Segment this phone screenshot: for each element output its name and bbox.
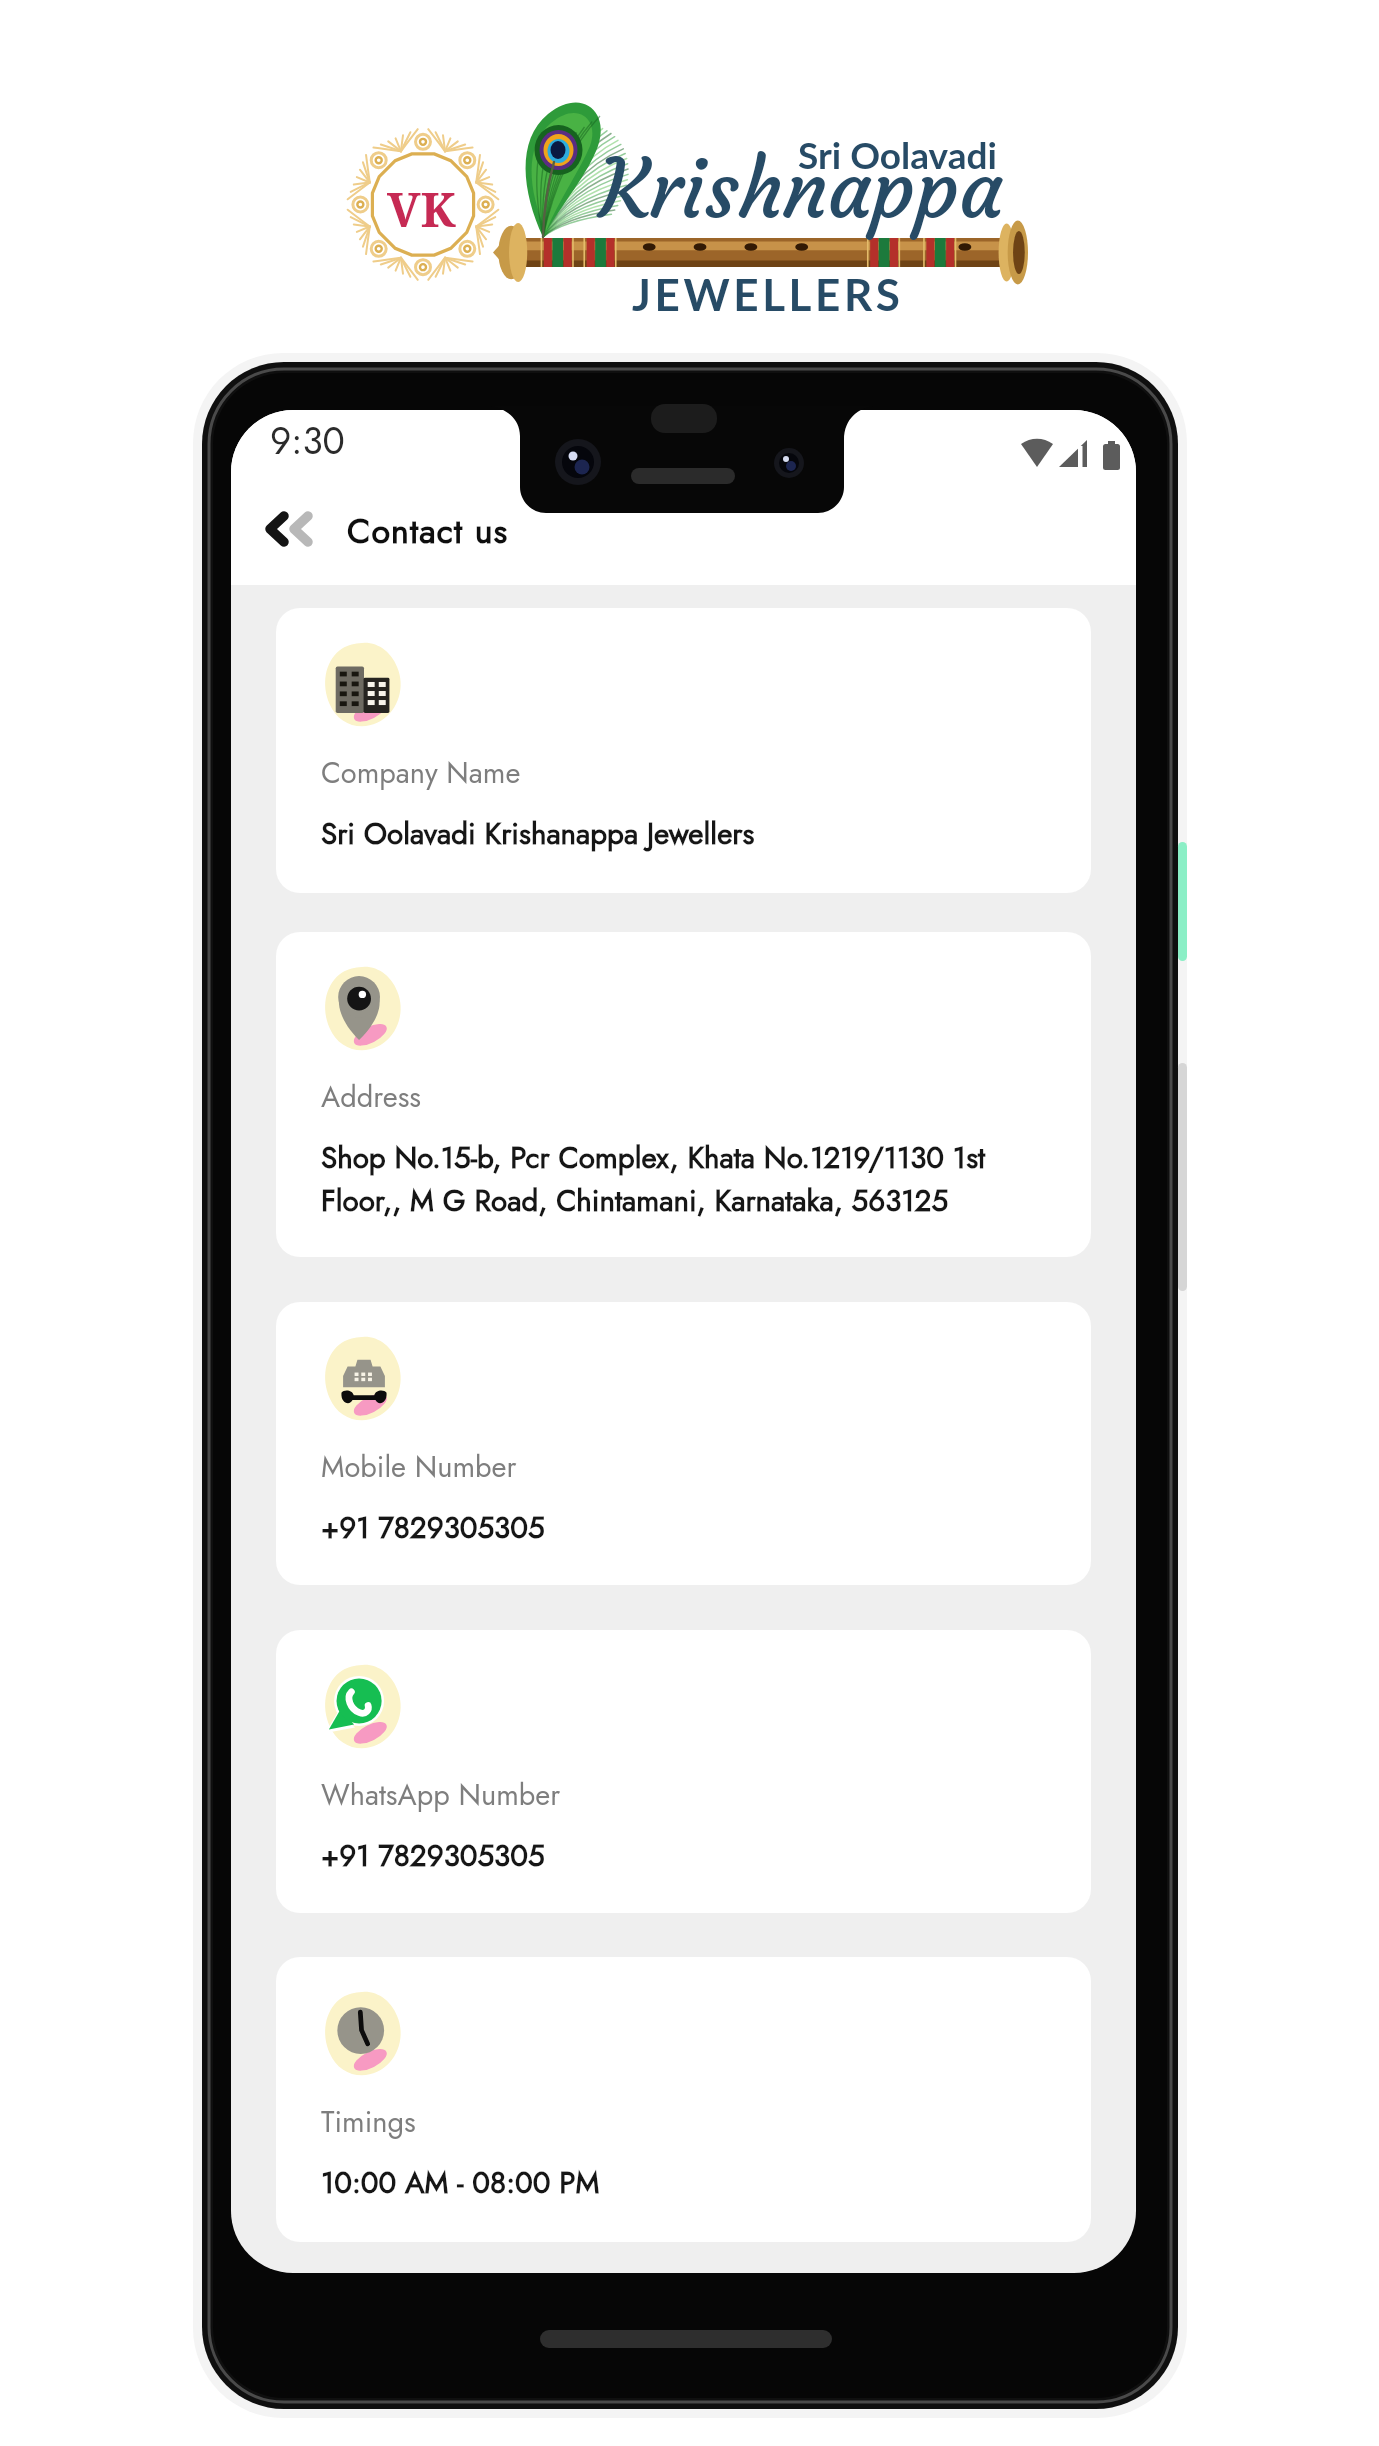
button[interactable]: Call [276, 1302, 1091, 1585]
staticText: Address [321, 1076, 422, 1118]
staticText: Timings [321, 2101, 416, 2143]
other: Timings [323, 1991, 405, 2077]
staticText: Krishnappa [600, 140, 1003, 240]
staticText: Sri Oolavadi Krishanappa Jewellers [321, 812, 755, 855]
staticText: 10:00 AM - 08:00 PM [321, 2161, 600, 2204]
staticText: +91 7829305305 [321, 1834, 545, 1877]
staticText: WhatsApp Number [321, 1774, 561, 1816]
staticText: VK [387, 176, 456, 241]
button[interactable]: Timings [276, 1957, 1091, 2242]
button[interactable]: WhatsApp [276, 1630, 1091, 1913]
staticText: JEWELLERS [632, 268, 904, 321]
button[interactable]: Address [276, 932, 1091, 1257]
staticText: Sri Oolavadi [798, 132, 997, 176]
button[interactable]: Back [248, 490, 330, 568]
staticText: Mobile Number [321, 1446, 517, 1488]
staticText: Contact us [347, 507, 509, 556]
other: Call [323, 1336, 405, 1422]
staticText: Floor,, M G Road, Chintamani, Karnataka,… [321, 1179, 949, 1222]
other: Address [323, 966, 405, 1052]
other: WhatsApp [323, 1664, 405, 1750]
other: Company [323, 642, 405, 728]
staticText: +91 7829305305 [321, 1506, 545, 1549]
button[interactable]: Company [276, 608, 1091, 893]
staticText: Company Name [321, 752, 521, 794]
staticText: Shop No.15-b, Pcr Complex, Khata No.1219… [321, 1136, 986, 1179]
staticText: 9:30 [270, 414, 345, 467]
